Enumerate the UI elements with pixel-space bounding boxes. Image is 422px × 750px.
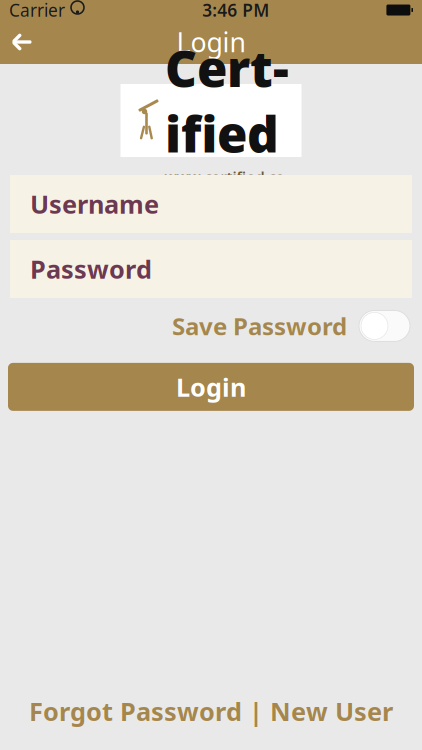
staticText: Username bbox=[30, 187, 159, 221]
staticText: www.certified.com bbox=[164, 167, 289, 206]
button[interactable]: Save Password bbox=[172, 310, 410, 342]
staticText: Certified bbox=[165, 35, 289, 166]
staticText: Login bbox=[176, 24, 245, 60]
staticText: Password bbox=[30, 252, 152, 286]
staticText: 3:46 PM bbox=[202, 0, 269, 21]
staticText: Carrier bbox=[9, 0, 65, 21]
button[interactable]: Login bbox=[8, 363, 414, 411]
staticText: Login bbox=[176, 370, 246, 404]
button[interactable]: Back bbox=[0, 20, 44, 64]
staticText: Save Password bbox=[172, 310, 347, 342]
staticText: Forgot Password bbox=[29, 694, 242, 728]
button[interactable]: Forgot Password bbox=[29, 694, 242, 728]
staticText: | bbox=[242, 694, 270, 728]
button[interactable]: New User bbox=[270, 694, 393, 728]
staticText: New User bbox=[270, 694, 393, 728]
